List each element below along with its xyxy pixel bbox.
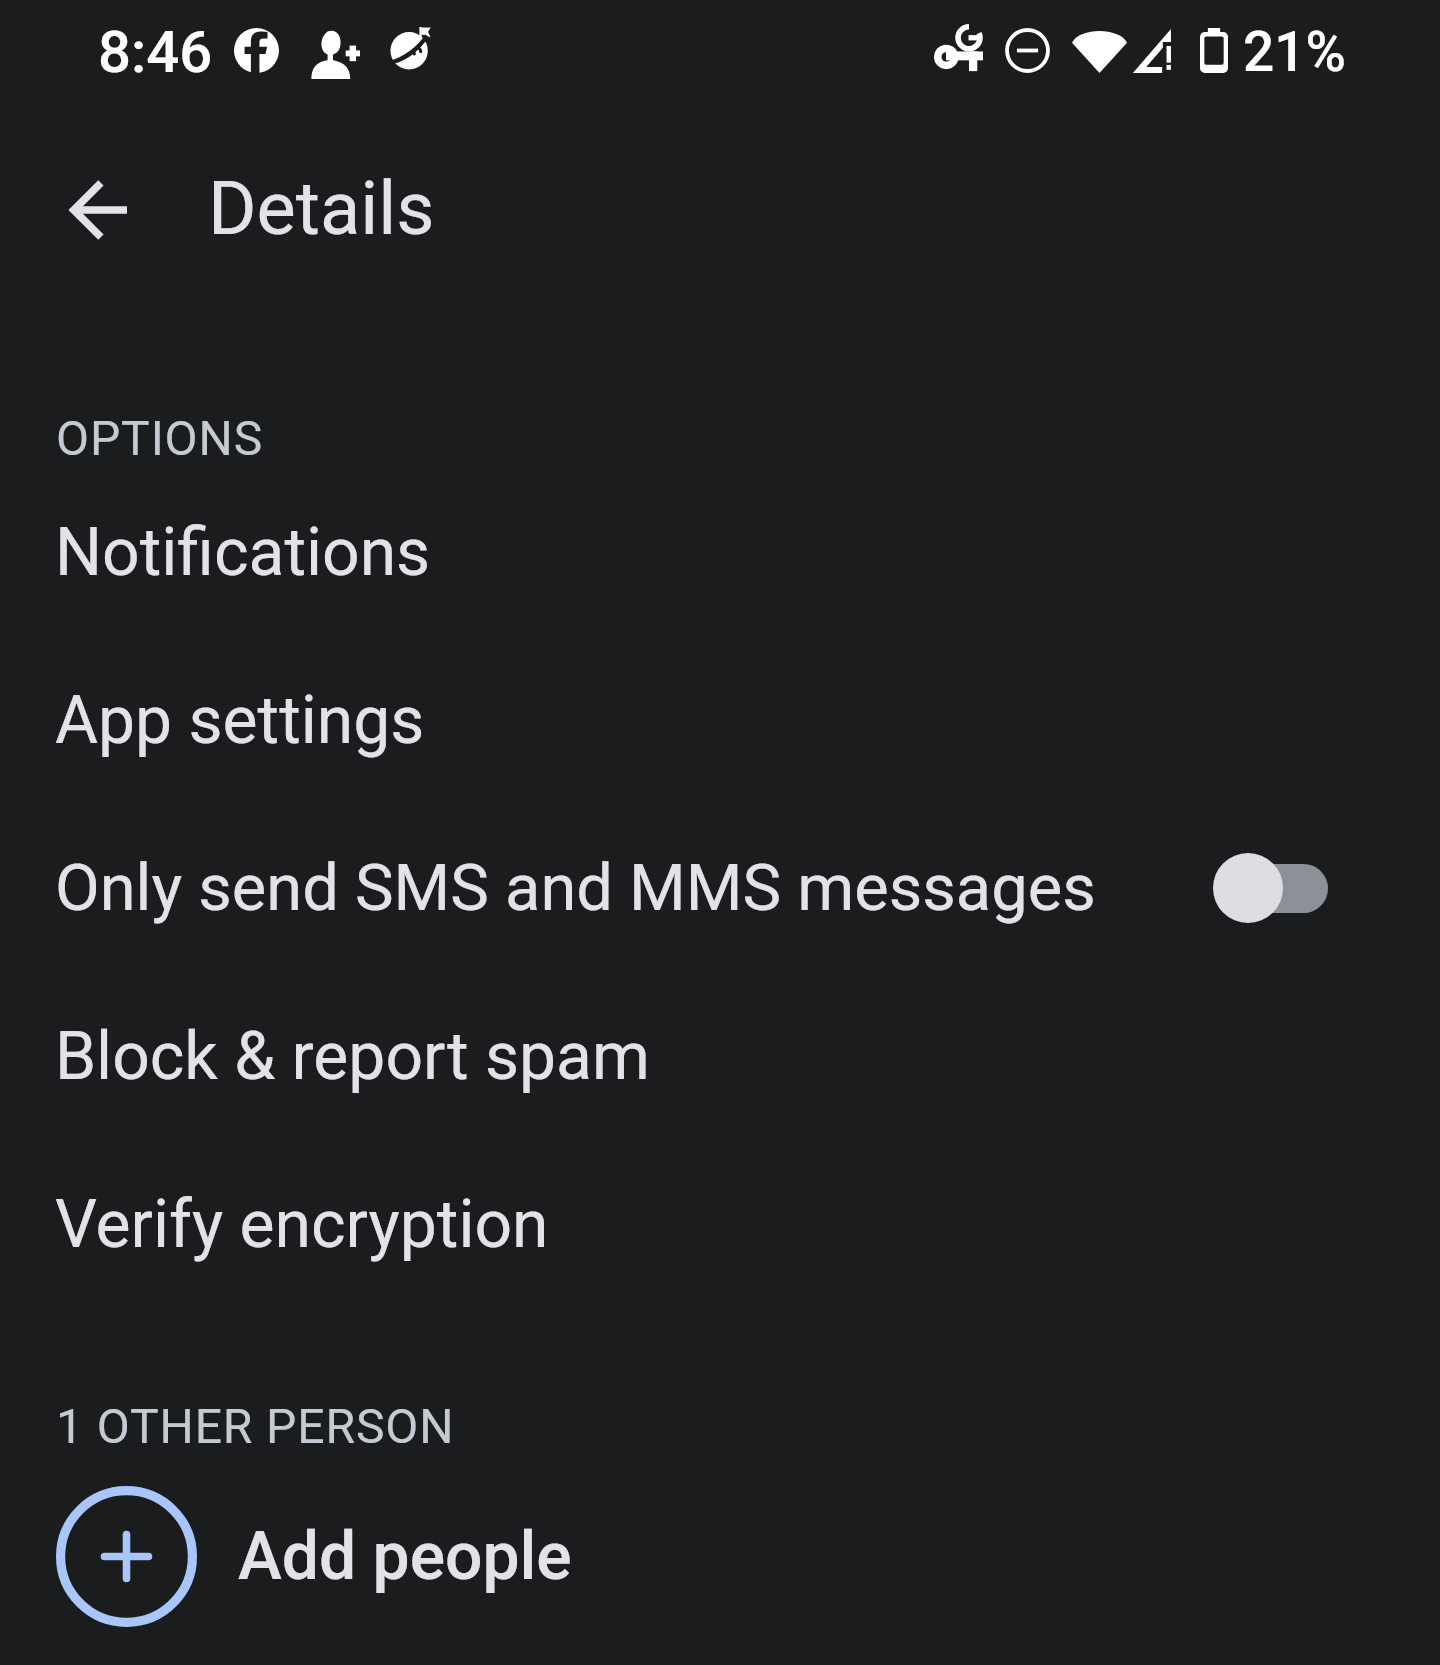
- staticText: Only send SMS and MMS messages: [55, 850, 1096, 926]
- staticText: Add people: [238, 1518, 572, 1595]
- staticText: App settings: [55, 682, 425, 759]
- button[interactable]: Block & report spam: [0, 972, 1440, 1140]
- staticText: 1 OTHER PERSON: [56, 1398, 455, 1454]
- button[interactable]: Verify encryption: [0, 1140, 1440, 1308]
- staticText: Notifications: [55, 514, 431, 591]
- staticText: 21%: [1243, 20, 1347, 84]
- button[interactable]: App settings: [0, 636, 1440, 804]
- button[interactable]: Add people: [0, 1485, 1440, 1627]
- staticText: Block & report spam: [55, 1018, 650, 1095]
- staticText: Details: [208, 165, 435, 252]
- button[interactable]: Only send SMS and MMS messages: [0, 804, 1440, 972]
- staticText: 8:46: [98, 18, 213, 86]
- staticText: OPTIONS: [56, 410, 264, 466]
- button[interactable]: Only send SMS and MMS messages toggle, o…: [1205, 846, 1336, 930]
- button[interactable]: Notifications: [0, 468, 1440, 636]
- button[interactable]: Back: [42, 154, 154, 266]
- staticText: Verify encryption: [55, 1186, 549, 1263]
